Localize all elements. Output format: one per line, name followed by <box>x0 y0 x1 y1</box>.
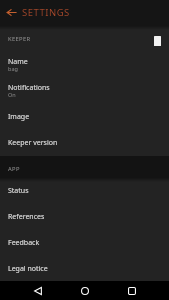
button[interactable]: Notifications <box>0 78 169 104</box>
staticText: Notifications <box>8 83 50 93</box>
button[interactable]: Keeper version <box>0 130 169 156</box>
staticText: KEEPER <box>8 35 31 43</box>
staticText: bag <box>8 65 18 72</box>
staticText: Image <box>8 112 30 122</box>
staticText: Keeper version <box>8 138 58 148</box>
staticText: APP <box>8 165 20 173</box>
button[interactable]: References <box>0 204 169 230</box>
staticText: Status <box>8 186 29 196</box>
button[interactable]: Home <box>75 281 94 300</box>
button[interactable]: Image <box>0 104 169 130</box>
button[interactable]: Recent apps <box>122 281 141 300</box>
staticText: Name <box>8 57 28 67</box>
staticText: SETTINGS <box>22 6 70 19</box>
staticText: Feedback <box>8 238 40 248</box>
button[interactable]: Back <box>28 281 47 300</box>
button[interactable]: Name <box>0 52 169 78</box>
button[interactable]: Legal notice <box>0 256 169 281</box>
staticText: References <box>8 212 45 222</box>
button[interactable]: Feedback <box>0 230 169 256</box>
button[interactable]: Status <box>0 178 169 204</box>
staticText: Legal notice <box>8 264 48 274</box>
staticText: On <box>8 91 16 98</box>
button[interactable]: Back <box>0 1 22 23</box>
